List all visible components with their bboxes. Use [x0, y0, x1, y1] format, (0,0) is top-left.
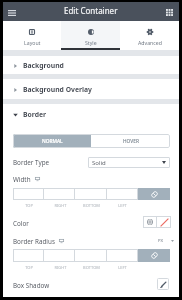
button[interactable]: Apps	[163, 6, 176, 19]
button[interactable]: Layout	[3, 21, 61, 50]
button[interactable]: Advanced	[120, 21, 179, 50]
button[interactable]: Style	[61, 21, 120, 50]
staticText: LEFT	[107, 203, 138, 208]
button[interactable]: Link values together	[138, 249, 170, 262]
staticText: RIGHT	[45, 265, 76, 270]
button[interactable]	[75, 249, 106, 262]
button[interactable]: Unit px	[157, 238, 165, 244]
button[interactable]	[75, 188, 106, 200]
button[interactable]: Edit box shadow	[157, 278, 169, 290]
staticText: Edit Container	[64, 5, 118, 16]
staticText: Width	[13, 175, 31, 182]
staticText: TOP	[13, 203, 45, 208]
button[interactable]	[107, 249, 138, 262]
button[interactable]: NORMAL	[13, 134, 91, 148]
staticText: NORMAL	[42, 138, 63, 145]
staticText: Layout	[24, 39, 41, 46]
button[interactable]	[13, 249, 43, 262]
staticText: Style	[85, 39, 97, 46]
staticText: Color	[13, 219, 29, 228]
staticText: HOVER	[123, 138, 139, 145]
button[interactable]: Background	[3, 56, 179, 75]
button[interactable]: More units	[170, 239, 174, 243]
staticText: Box Shadow	[13, 281, 50, 290]
staticText: Solid	[92, 159, 106, 167]
button[interactable]: Menu	[5, 6, 18, 19]
button[interactable]	[44, 249, 74, 262]
staticText: LEFT	[107, 265, 138, 270]
staticText: BOTTOM	[76, 203, 107, 208]
button[interactable]: Pick color	[157, 216, 171, 228]
staticText: BOTTOM	[76, 265, 107, 270]
staticText: PX	[158, 238, 164, 244]
button[interactable]: Border	[3, 105, 179, 124]
staticText: Advanced	[138, 39, 162, 46]
staticText: Border	[23, 110, 47, 119]
button[interactable]: Solid	[88, 157, 170, 168]
staticText: Background	[23, 61, 64, 70]
staticText: Border Radius	[13, 237, 55, 244]
button[interactable]: Link values together	[138, 188, 170, 200]
button[interactable]	[44, 188, 74, 200]
staticText: TOP	[13, 265, 45, 270]
button[interactable]: Background Overlay	[3, 80, 179, 99]
button[interactable]	[107, 188, 138, 200]
staticText: RIGHT	[45, 203, 76, 208]
button[interactable]: HOVER	[91, 134, 170, 148]
staticText: Background Overlay	[23, 85, 92, 94]
button[interactable]	[13, 188, 43, 200]
staticText: Border Type	[13, 158, 50, 167]
button[interactable]: Global colors	[143, 216, 156, 228]
